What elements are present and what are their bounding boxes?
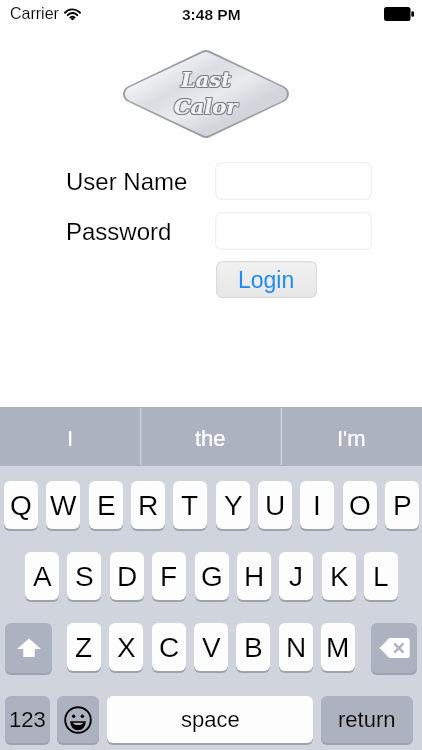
staticText: C	[159, 632, 180, 663]
button[interactable]: X	[109, 623, 143, 673]
button[interactable]: U	[258, 481, 292, 531]
button[interactable]	[215, 162, 372, 200]
staticText: L	[373, 561, 389, 592]
staticText: 3:48 PM	[182, 6, 241, 23]
button[interactable]: the	[140, 407, 281, 466]
staticText: S	[75, 561, 94, 592]
button[interactable]: E	[89, 481, 123, 531]
staticText: G	[201, 561, 223, 592]
button[interactable]: T	[173, 481, 207, 531]
button[interactable]: O	[343, 481, 377, 531]
staticText: Calor	[173, 94, 237, 119]
button[interactable]: Backspace	[371, 623, 417, 675]
staticText: Last	[180, 67, 230, 92]
staticText: Last	[182, 67, 232, 92]
staticText: A	[33, 561, 52, 592]
staticText: T	[181, 490, 199, 521]
staticText: Last	[180, 68, 230, 93]
button[interactable]: N	[279, 623, 313, 673]
staticText: Last	[181, 67, 231, 92]
button[interactable]: I	[0, 407, 140, 466]
staticText: Z	[75, 632, 93, 663]
button[interactable]: S	[67, 552, 101, 602]
button[interactable]: Emoji	[57, 696, 99, 745]
button[interactable]: D	[110, 552, 144, 602]
staticText: N	[286, 632, 307, 663]
staticText: Calor	[175, 93, 239, 118]
staticText: Calor	[175, 95, 239, 120]
staticText: I	[67, 426, 74, 451]
button[interactable]: G	[195, 552, 229, 602]
button[interactable]: M	[321, 623, 355, 673]
staticText: O	[349, 490, 371, 521]
button[interactable]	[215, 212, 372, 250]
staticText: Calor	[175, 94, 239, 119]
staticText: D	[117, 561, 138, 592]
button[interactable]: Z	[67, 623, 101, 673]
button[interactable]: Login	[216, 261, 317, 298]
button[interactable]: K	[322, 552, 356, 602]
staticText: I'm	[337, 426, 366, 451]
staticText: J	[289, 561, 303, 592]
button[interactable]: A	[25, 552, 59, 602]
staticText: M	[326, 632, 350, 663]
staticText: H	[244, 561, 265, 592]
button[interactable]: V	[194, 623, 228, 673]
staticText: V	[202, 632, 221, 663]
staticText: I	[313, 490, 321, 521]
button[interactable]: Y	[216, 481, 250, 531]
staticText: U	[265, 490, 286, 521]
button[interactable]: R	[131, 481, 165, 531]
staticText: Calor	[173, 93, 237, 118]
staticText: Last	[180, 66, 230, 91]
staticText: Y	[224, 490, 243, 521]
staticText: P	[393, 490, 412, 521]
button[interactable]: P	[385, 481, 419, 531]
staticText: W	[50, 490, 77, 521]
button[interactable]: J	[279, 552, 313, 602]
button[interactable]: I	[300, 481, 334, 531]
button[interactable]: F	[152, 552, 186, 602]
button[interactable]: L	[364, 552, 398, 602]
staticText: Last	[182, 66, 232, 91]
staticText: return	[338, 707, 396, 732]
staticText: Calor	[174, 94, 238, 119]
staticText: Calor	[174, 93, 238, 118]
staticText: Carrier	[10, 5, 59, 23]
button[interactable]: return	[321, 696, 413, 745]
staticText: Calor	[173, 95, 237, 120]
staticText: Last	[181, 66, 231, 91]
button[interactable]: Shift	[5, 623, 52, 675]
button[interactable]: 123	[5, 696, 50, 745]
staticText: X	[117, 632, 136, 663]
button[interactable]: B	[236, 623, 270, 673]
staticText: User Name	[66, 168, 188, 195]
button[interactable]: W	[46, 481, 80, 531]
staticText: space	[181, 707, 240, 732]
staticText: E	[97, 490, 116, 521]
staticText: Password	[66, 218, 172, 245]
staticText: Login	[238, 267, 295, 293]
button[interactable]: I'm	[281, 407, 422, 466]
staticText: K	[330, 561, 349, 592]
staticText: Q	[10, 490, 32, 521]
staticText: 123	[9, 707, 46, 732]
button[interactable]: space	[107, 696, 313, 745]
staticText: F	[160, 561, 178, 592]
staticText: Last	[182, 68, 232, 93]
button[interactable]: C	[152, 623, 186, 673]
staticText: Last	[181, 68, 231, 93]
staticText: B	[244, 632, 263, 663]
button[interactable]: Q	[4, 481, 38, 531]
staticText: Calor	[174, 95, 238, 120]
staticText: the	[195, 426, 226, 451]
staticText: R	[138, 490, 159, 521]
button[interactable]: H	[237, 552, 271, 602]
